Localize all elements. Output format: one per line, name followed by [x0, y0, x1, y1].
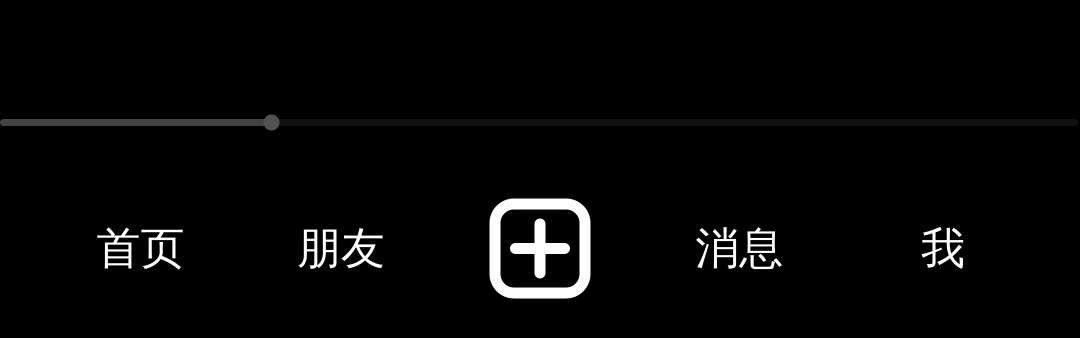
- button[interactable]: 消息: [640, 159, 841, 338]
- staticText: 首页: [96, 221, 184, 275]
- staticText: 消息: [695, 221, 783, 275]
- button[interactable]: 首页: [39, 159, 239, 338]
- staticText: 我: [921, 221, 965, 275]
- button[interactable]: 朋友: [239, 159, 440, 338]
- staticText: 朋友: [297, 221, 385, 275]
- button[interactable]: Create: [440, 159, 640, 338]
- button[interactable]: 我: [841, 159, 1041, 338]
